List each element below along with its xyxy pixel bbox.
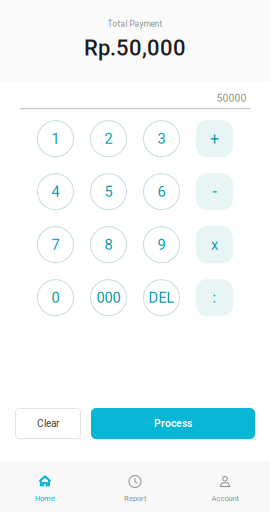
staticText: 3 xyxy=(157,130,165,147)
button[interactable]: 6 xyxy=(143,173,180,210)
staticText: 9 xyxy=(157,236,165,253)
button[interactable]: Account xyxy=(180,461,270,512)
staticText: 000 xyxy=(96,289,120,306)
staticText: 50000 xyxy=(216,92,246,104)
staticText: - xyxy=(212,182,216,201)
button[interactable]: 9 xyxy=(143,226,180,263)
staticText: : xyxy=(212,289,216,306)
button[interactable]: - xyxy=(196,173,233,210)
button[interactable]: Clear xyxy=(15,408,81,439)
staticText: 5 xyxy=(104,183,112,200)
button[interactable]: DEL xyxy=(143,279,180,316)
staticText: Rp.50,000 xyxy=(84,35,186,61)
staticText: Home xyxy=(35,494,55,503)
button[interactable]: 4 xyxy=(37,173,74,210)
staticText: 2 xyxy=(104,130,112,147)
button[interactable]: 7 xyxy=(37,226,74,263)
button[interactable]: Process xyxy=(91,408,255,439)
staticText: DEL xyxy=(148,289,174,306)
staticText: Report xyxy=(124,494,146,503)
staticText: 4 xyxy=(51,183,59,200)
staticText: 8 xyxy=(104,236,112,253)
button[interactable]: + xyxy=(196,120,233,157)
staticText: Process xyxy=(154,417,192,430)
button[interactable]: : xyxy=(196,279,233,316)
staticText: 1 xyxy=(51,130,59,147)
button[interactable]: Report xyxy=(90,461,180,512)
staticText: 7 xyxy=(51,236,59,253)
button[interactable]: 3 xyxy=(143,120,180,157)
button[interactable]: 0 xyxy=(37,279,74,316)
staticText: 0 xyxy=(51,289,59,306)
staticText: 6 xyxy=(157,183,165,200)
staticText: + xyxy=(210,129,219,148)
button[interactable]: 1 xyxy=(37,120,74,157)
staticText: x xyxy=(211,236,218,253)
staticText: Account xyxy=(211,494,238,503)
button[interactable]: 8 xyxy=(90,226,127,263)
button[interactable]: x xyxy=(196,226,233,263)
staticText: Total Payment xyxy=(107,19,162,29)
button[interactable]: 000 xyxy=(90,279,127,316)
button[interactable]: Home xyxy=(0,461,90,512)
staticText: Clear xyxy=(37,418,59,429)
button[interactable]: 2 xyxy=(90,120,127,157)
button[interactable]: 5 xyxy=(90,173,127,210)
